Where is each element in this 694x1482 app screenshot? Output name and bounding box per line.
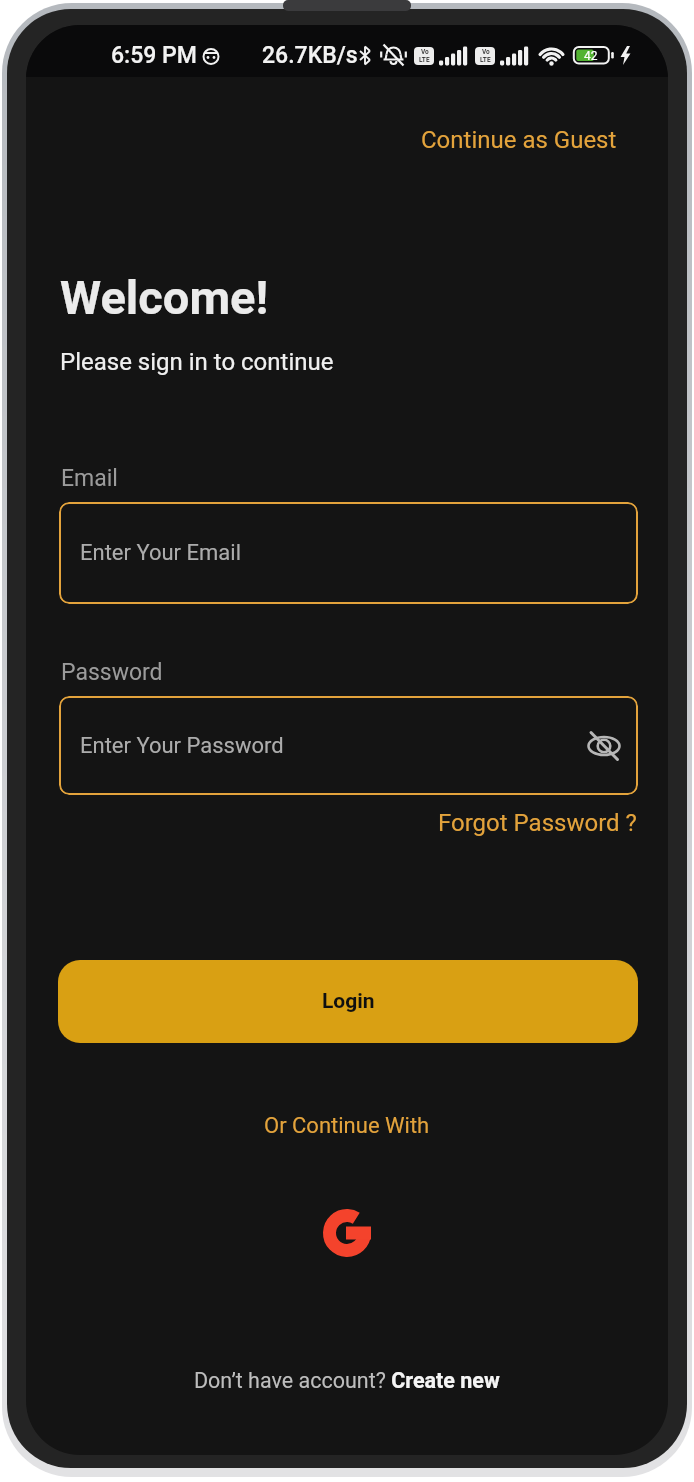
button[interactable]: Login: [58, 960, 638, 1043]
staticText: Welcome!: [60, 270, 269, 325]
staticText: LTE: [480, 56, 491, 64]
button[interactable]: [586, 729, 622, 763]
staticText: Enter Your Password: [80, 733, 284, 759]
button[interactable]: Forgot Password ?: [438, 809, 637, 837]
staticText: Or Continue With: [264, 1113, 430, 1139]
staticText: Password: [61, 659, 163, 686]
button[interactable]: Enter Your Email: [59, 502, 638, 604]
staticText: Vo: [421, 48, 429, 56]
staticText: 42: [584, 49, 598, 63]
staticText: LTE: [419, 56, 430, 64]
staticText: Email: [61, 465, 118, 492]
staticText: Vo: [482, 48, 490, 56]
staticText: Don’t have account? Create new: [194, 1368, 500, 1393]
button[interactable]: Continue as Guest: [421, 126, 617, 154]
staticText: Login: [322, 989, 375, 1014]
staticText: 6:59 PM: [111, 42, 197, 69]
button[interactable]: Enter Your Password: [59, 696, 638, 795]
staticText: 26.7KB/s: [262, 42, 358, 69]
button[interactable]: [323, 1209, 371, 1257]
button[interactable]: Don’t have account? Create new: [194, 1368, 500, 1393]
staticText: Enter Your Email: [80, 540, 241, 566]
staticText: Please sign in to continue: [60, 348, 334, 376]
staticText: Forgot Password ?: [438, 809, 637, 837]
staticText: Continue as Guest: [421, 126, 617, 154]
